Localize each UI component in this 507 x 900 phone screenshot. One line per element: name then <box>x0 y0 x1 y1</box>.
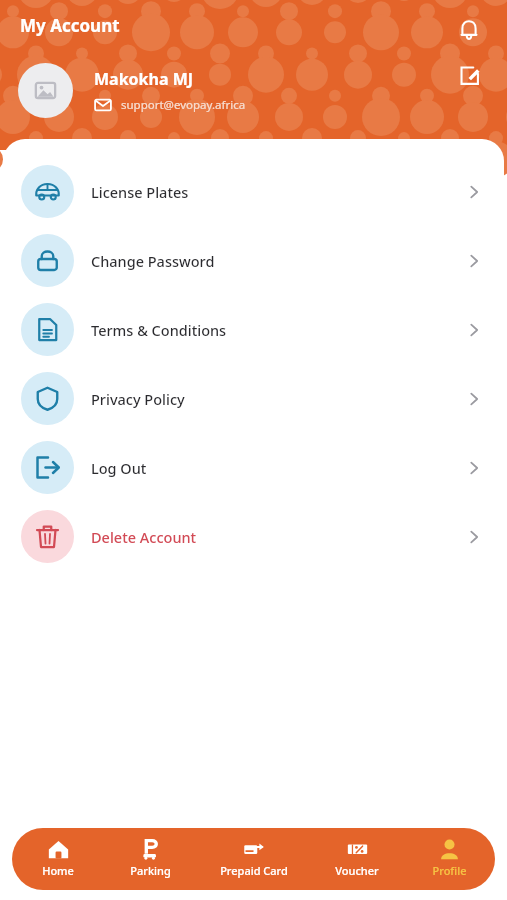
staticText: Voucher <box>335 863 379 878</box>
staticText: support@evopay.africa <box>121 97 246 113</box>
button[interactable]: Delete Account <box>3 502 504 571</box>
button[interactable]: Notifications <box>452 13 486 47</box>
staticText: Delete Account <box>91 527 466 547</box>
staticText: Profile <box>432 863 467 878</box>
staticText: License Plates <box>91 182 466 202</box>
button[interactable]: Change Password <box>3 226 504 295</box>
staticText: Parking <box>130 863 171 878</box>
staticText: Terms & Conditions <box>91 320 466 340</box>
staticText: Privacy Policy <box>91 389 466 409</box>
staticText: Change Password <box>91 251 466 271</box>
staticText: Log Out <box>91 458 466 478</box>
button[interactable]: Home <box>12 828 104 890</box>
button[interactable]: Log Out <box>3 433 504 502</box>
button[interactable]: Edit profile <box>452 58 486 92</box>
staticText: Home <box>42 863 74 878</box>
button[interactable]: Terms & Conditions <box>3 295 504 364</box>
button[interactable]: Profile <box>403 828 495 890</box>
button[interactable]: Voucher <box>311 828 403 890</box>
staticText: My Account <box>20 14 120 37</box>
button[interactable]: Privacy Policy <box>3 364 504 433</box>
button[interactable]: License Plates <box>3 157 504 226</box>
staticText: Prepaid Card <box>220 863 288 878</box>
staticText: Makokha MJ <box>94 68 194 90</box>
button[interactable]: Prepaid Card <box>196 828 311 890</box>
button[interactable]: Parking <box>104 828 196 890</box>
button[interactable]: Profile photo <box>18 63 73 118</box>
